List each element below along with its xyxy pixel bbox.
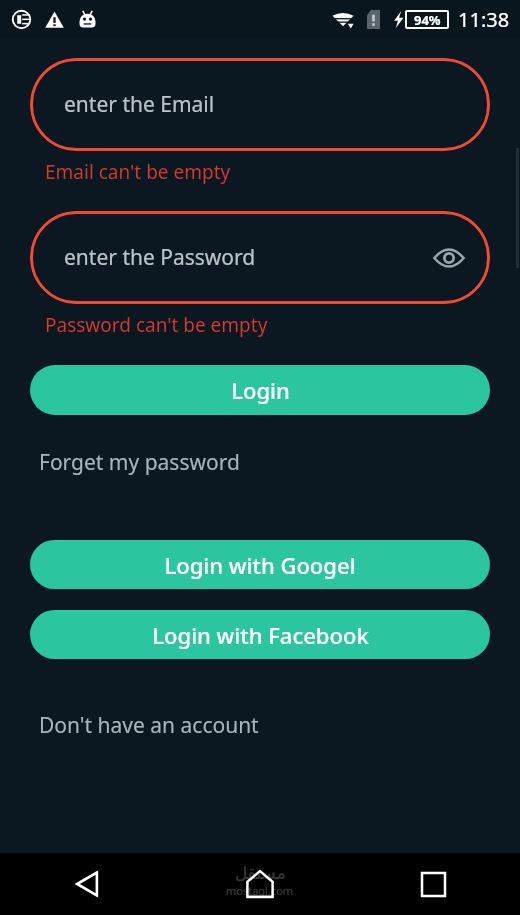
button[interactable]: enter the Email (30, 58, 490, 151)
button[interactable]: Login with Googel (30, 540, 490, 589)
staticText: Email can't be empty (45, 159, 231, 185)
button[interactable]: Back (60, 857, 114, 911)
button[interactable]: enter the Password (30, 211, 490, 304)
button[interactable]: Forget my password (39, 448, 240, 477)
button[interactable]: Don't have an account (39, 711, 259, 740)
staticText: 94% (414, 11, 441, 29)
staticText: مستقل (235, 863, 286, 883)
button[interactable]: Login (30, 365, 490, 415)
staticText: mostaql.com (226, 883, 294, 898)
staticText: Login with Googel (164, 550, 356, 580)
staticText: enter the Email (64, 90, 215, 119)
button[interactable]: Recent apps (406, 857, 460, 911)
staticText: Login (231, 375, 290, 405)
button[interactable]: Login with Facebook (30, 610, 490, 659)
button[interactable]: Show password (428, 237, 470, 279)
staticText: Login with Facebook (152, 620, 369, 650)
staticText: Password can't be empty (45, 312, 268, 338)
staticText: enter the Password (64, 243, 256, 272)
button[interactable]: Home (233, 857, 287, 911)
staticText: 11:38 (458, 6, 510, 33)
